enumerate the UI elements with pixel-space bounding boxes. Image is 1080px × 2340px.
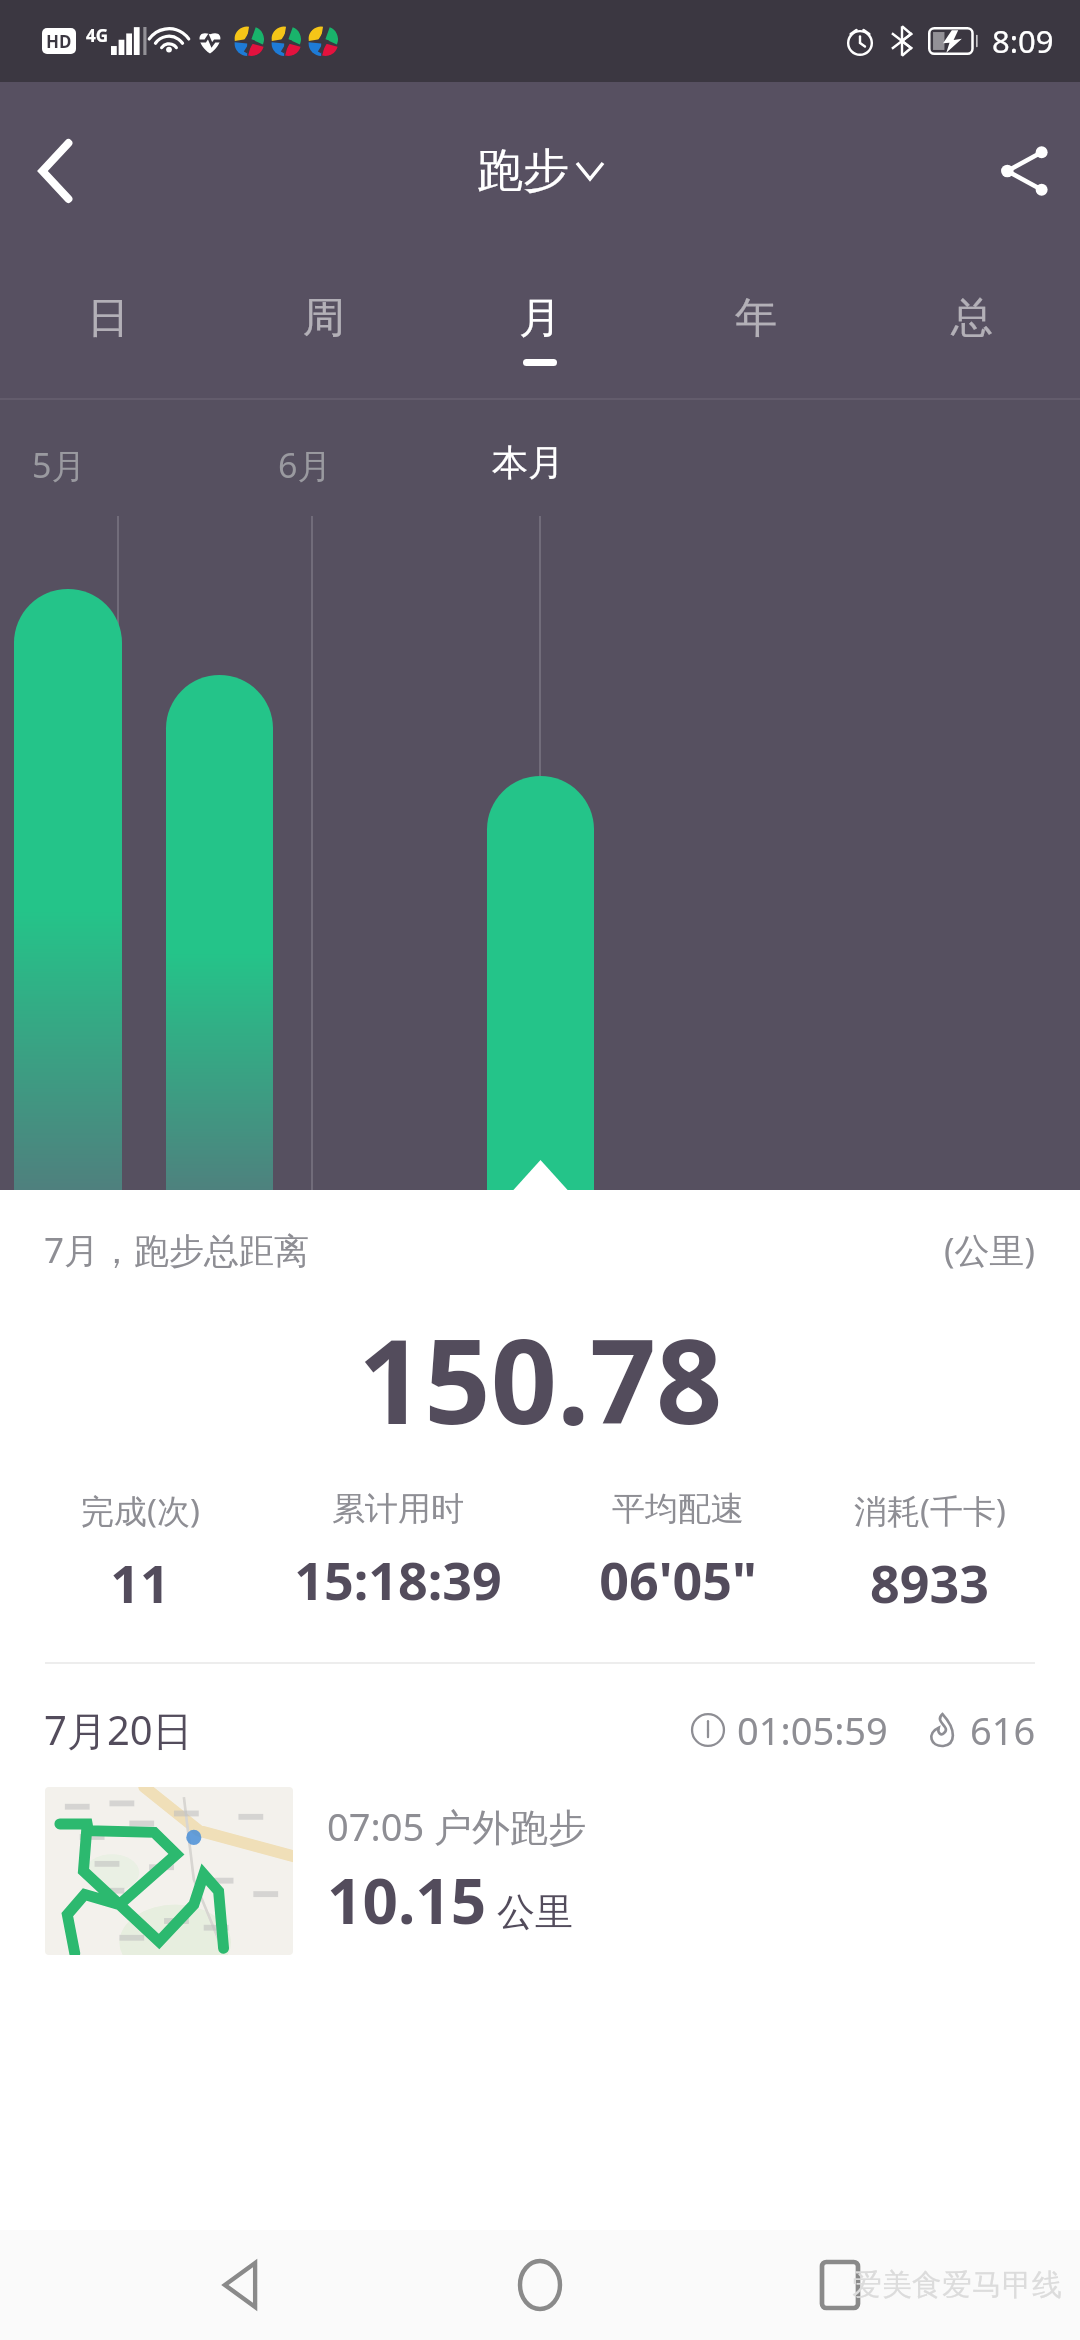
staticText: 8:09 <box>992 20 1054 62</box>
staticText: 平均配速 <box>612 1488 744 1530</box>
staticText: 11 <box>110 1547 170 1618</box>
staticText: 07:05 户外跑步 <box>327 1800 587 1852</box>
button[interactable]: Back <box>0 116 110 226</box>
button[interactable]: 7月20日 <box>0 1664 1080 1975</box>
button[interactable]: 周 <box>216 260 432 398</box>
staticText: 616 <box>970 1704 1036 1756</box>
staticText: 15:18:39 <box>294 1544 502 1615</box>
staticText: (公里) <box>944 1226 1036 1274</box>
staticText: 6月 <box>278 442 332 488</box>
staticText: 累计用时 <box>332 1488 464 1530</box>
staticText: 周 <box>303 292 345 345</box>
staticText: 公里 <box>497 1888 573 1936</box>
button[interactable]: Back <box>185 2230 295 2340</box>
staticText: 06'05" <box>599 1544 757 1615</box>
staticText: 完成(次) <box>81 1488 200 1533</box>
staticText: 月 <box>519 292 561 345</box>
staticText: 01:05:59 <box>737 1704 888 1756</box>
button[interactable]: 总 <box>864 260 1080 398</box>
button[interactable]: Share <box>970 116 1080 226</box>
staticText: 爱美食爱马甲线 <box>852 2266 1062 2304</box>
staticText: HD <box>46 30 72 53</box>
staticText: 7月20日 <box>44 1702 193 1757</box>
staticText: 8933 <box>870 1547 989 1618</box>
staticText: 5月 <box>32 442 86 488</box>
staticText: 150.78 <box>358 1300 723 1458</box>
staticText: 本月 <box>492 440 564 485</box>
button[interactable]: Recents <box>785 2230 895 2340</box>
button[interactable]: 年 <box>648 260 864 398</box>
staticText: 总 <box>951 292 993 345</box>
staticText: 7月，跑步总距离 <box>44 1226 310 1274</box>
staticText: 日 <box>87 292 129 345</box>
button[interactable]: 月 <box>432 260 648 398</box>
button[interactable]: 日 <box>0 260 216 398</box>
staticText: 4G <box>86 24 109 47</box>
button[interactable]: Home <box>485 2230 595 2340</box>
staticText: 年 <box>735 292 777 345</box>
staticText: 10.15 <box>327 1858 487 1942</box>
staticText: 跑步 <box>477 142 569 200</box>
button[interactable]: 跑步 <box>477 142 603 200</box>
staticText: 消耗(千卡) <box>854 1488 1006 1533</box>
